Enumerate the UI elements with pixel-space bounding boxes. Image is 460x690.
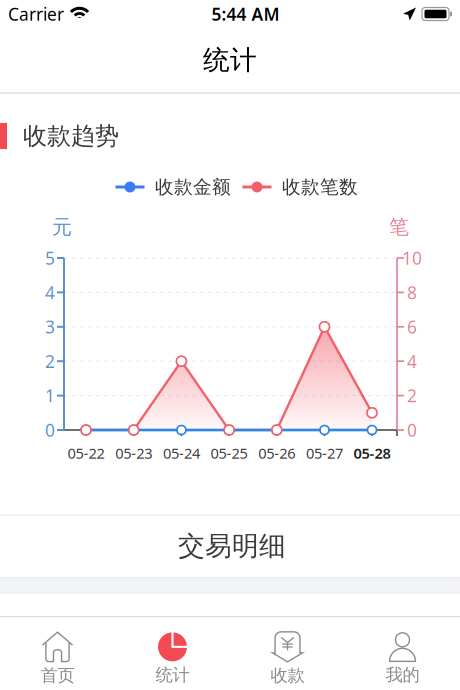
staticText: 5	[45, 246, 55, 269]
staticText: 笔	[389, 215, 409, 239]
staticText: 收款笔数	[282, 175, 358, 198]
button[interactable]: 收款	[230, 616, 345, 690]
staticText: 统计	[155, 664, 189, 686]
staticText: 4	[407, 350, 417, 373]
staticText: 05-24	[163, 443, 200, 463]
staticText: 05-22	[67, 443, 104, 463]
staticText: 收款	[270, 665, 304, 686]
staticText: 05-25	[211, 443, 248, 463]
staticText: 统计	[203, 44, 257, 76]
staticText: 4	[45, 281, 55, 304]
button[interactable]: 统计	[203, 44, 257, 76]
staticText: 05-27	[306, 443, 343, 463]
staticText: 元	[52, 215, 72, 239]
staticText: 2	[45, 350, 55, 373]
staticText: 5:44 AM	[211, 2, 279, 25]
staticText: 交易明细	[178, 530, 286, 562]
staticText: 05-23	[115, 443, 152, 463]
staticText: 8	[407, 281, 417, 304]
button[interactable]: 统计	[115, 616, 230, 690]
staticText: 05-28	[353, 443, 390, 463]
button[interactable]: 我的	[345, 616, 460, 690]
staticText: 10	[402, 246, 422, 269]
staticText: 05-26	[258, 443, 295, 463]
staticText: 6	[407, 315, 417, 338]
button[interactable]: 交易明细	[178, 530, 286, 562]
staticText: 收款趋势	[23, 121, 119, 151]
staticText: 收款金额	[155, 175, 231, 198]
staticText: 1	[45, 384, 55, 407]
staticText: Carrier	[8, 2, 64, 25]
staticText: 0	[45, 418, 55, 441]
staticText: 3	[45, 315, 55, 338]
staticText: 0	[407, 418, 417, 441]
staticText: 我的	[385, 664, 419, 686]
staticText: 2	[407, 384, 417, 407]
button[interactable]: 首页	[0, 616, 115, 690]
staticText: 首页	[40, 665, 74, 686]
